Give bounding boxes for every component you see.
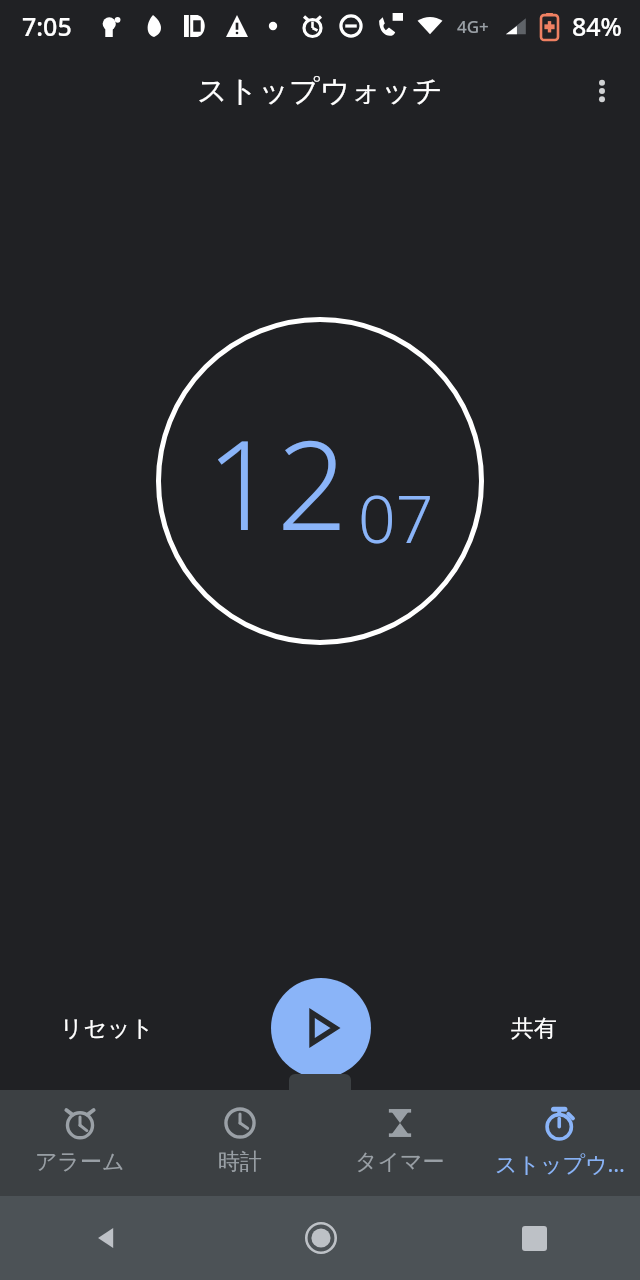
staticText: 12	[206, 397, 348, 566]
button[interactable]: Back	[77, 1208, 137, 1268]
button[interactable]: More options	[574, 63, 630, 119]
staticText: 4G+	[457, 15, 489, 38]
button[interactable]: 時計	[160, 1090, 320, 1196]
staticText: タイマー	[355, 1148, 445, 1176]
button[interactable]: リセット	[38, 1002, 177, 1055]
staticText: ストップウォッチ	[197, 72, 443, 110]
staticText: 共有	[511, 1014, 557, 1043]
staticText: リセット	[60, 1014, 155, 1043]
staticText: 7:05	[22, 9, 72, 43]
staticText: ストップウ…	[495, 1148, 625, 1178]
button[interactable]: アラーム	[0, 1090, 160, 1196]
staticText: アラーム	[35, 1148, 125, 1176]
button[interactable]: Start	[271, 978, 371, 1078]
staticText: 時計	[218, 1148, 262, 1176]
staticText: 07	[358, 472, 434, 562]
button[interactable]: ストップウ…	[480, 1090, 640, 1196]
button[interactable]: Recent apps	[504, 1208, 564, 1268]
button[interactable]: タイマー	[320, 1090, 480, 1196]
button[interactable]: Home	[291, 1208, 351, 1268]
button[interactable]: 共有	[489, 1002, 579, 1055]
staticText: 84%	[572, 9, 622, 43]
